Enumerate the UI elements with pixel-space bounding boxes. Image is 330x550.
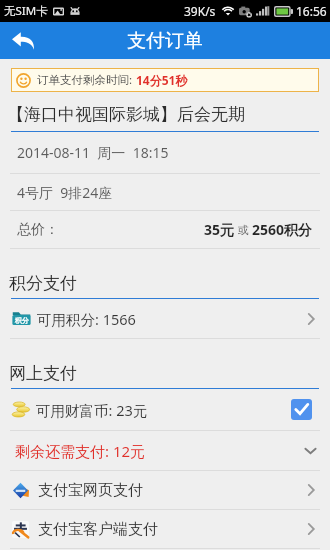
staticText: 16:56 [296, 3, 327, 19]
staticText: 积分支付 [9, 273, 77, 294]
staticText: 订单支付剩余时间: [37, 72, 133, 88]
staticText: 可用积分: 1566 [37, 309, 136, 329]
staticText: 39K/s [184, 3, 216, 19]
button[interactable]: 剩余还需支付: 12元 [0, 431, 330, 470]
button[interactable]: 积分 [0, 299, 330, 338]
staticText: 2560积分 [252, 220, 313, 239]
staticText: 无SIM卡 [4, 3, 48, 19]
staticText: 可用财富币: 23元 [36, 400, 148, 420]
staticText: 支付订单 [127, 29, 203, 53]
staticText: 4号厅 9排24座 [17, 183, 113, 202]
button[interactable]: 可用财富币: 23元 [0, 389, 330, 430]
staticText: 网上支付 [9, 363, 77, 384]
staticText: 支付宝客户端支付 [38, 520, 158, 539]
staticText: 14分51秒 [136, 72, 188, 88]
button[interactable]: 使用财富币 [291, 399, 312, 420]
staticText: 35元 [204, 220, 235, 239]
button[interactable]: 支付宝客户端支付 [0, 510, 330, 548]
staticText: 【海口中视国际影城】后会无期 [7, 104, 245, 125]
staticText: 积分 [15, 316, 29, 325]
button[interactable]: 返回 [0, 22, 46, 59]
staticText: 或 [235, 222, 252, 237]
staticText: 支付宝网页支付 [38, 481, 143, 500]
staticText: 剩余还需支付: 12元 [15, 441, 146, 461]
button[interactable]: 支付宝网页支付 [0, 471, 330, 509]
staticText: 2014-08-11 周一 18:15 [17, 143, 169, 162]
staticText: 总价： [17, 221, 59, 239]
